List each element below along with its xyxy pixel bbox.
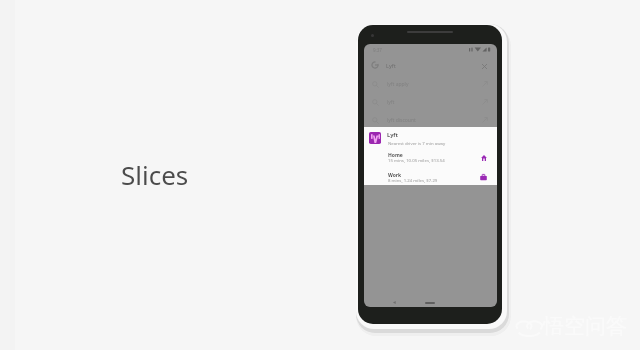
button[interactable]: Back [390,298,398,306]
button[interactable]: Home [425,302,435,304]
button[interactable]: Work [364,171,497,186]
button[interactable]: Work [478,172,489,183]
button[interactable]: Lyft [364,127,497,151]
staticText: 15 mins, 10.05 miles, $13.54 [388,157,445,163]
staticText: 8 mins, 1.24 miles, $7.29 [388,177,438,183]
staticText: lyft discount [387,117,416,124]
staticText: Work [388,172,402,179]
button[interactable]: Home [364,151,497,166]
staticText: lyft apply [387,81,409,88]
button[interactable]: Home [478,152,489,163]
staticText: Lyft [387,131,398,139]
staticText: lyft [387,99,395,106]
staticText: Nearest driver is 7 min away [388,140,446,146]
staticText: Home [388,152,403,159]
button[interactable]: lyft discount [364,112,497,130]
button[interactable]: Clear search [479,61,490,72]
staticText: Lyft [386,62,396,70]
staticText: 9:37 [373,47,382,53]
staticText: Slices [121,157,189,192]
